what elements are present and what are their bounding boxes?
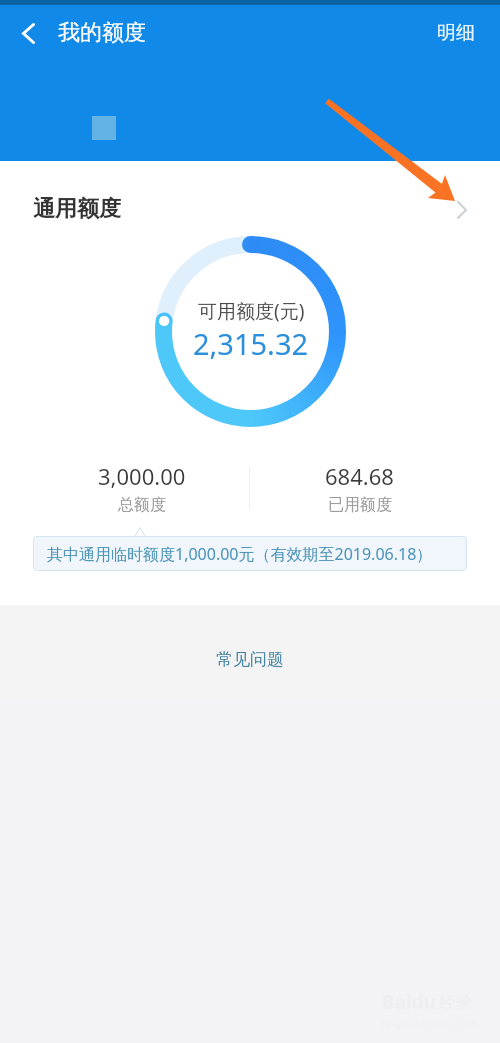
button[interactable]: Back	[0, 5, 56, 61]
staticText: 3,000.00	[98, 461, 186, 491]
staticText: 可用额度(元)	[198, 298, 305, 324]
staticText: 2,315.32	[193, 324, 309, 363]
staticText: 我的额度	[58, 19, 146, 47]
button[interactable]: 明细	[412, 7, 500, 59]
button[interactable]: 通用额度	[0, 161, 500, 223]
staticText: 通用额度	[33, 195, 121, 223]
staticText: 明细	[437, 21, 475, 45]
staticText: 其中通用临时额度1,000.00元（有效期至2019.06.18）	[47, 543, 433, 565]
staticText: 684.68	[325, 461, 394, 491]
staticText: 已用额度	[328, 495, 392, 515]
staticText: 常见问题	[216, 649, 284, 670]
button[interactable]: 其中通用临时额度1,000.00元（有效期至2019.06.18）	[33, 536, 467, 571]
button[interactable]: 常见问题	[206, 639, 294, 680]
staticText: 总额度	[118, 495, 166, 515]
